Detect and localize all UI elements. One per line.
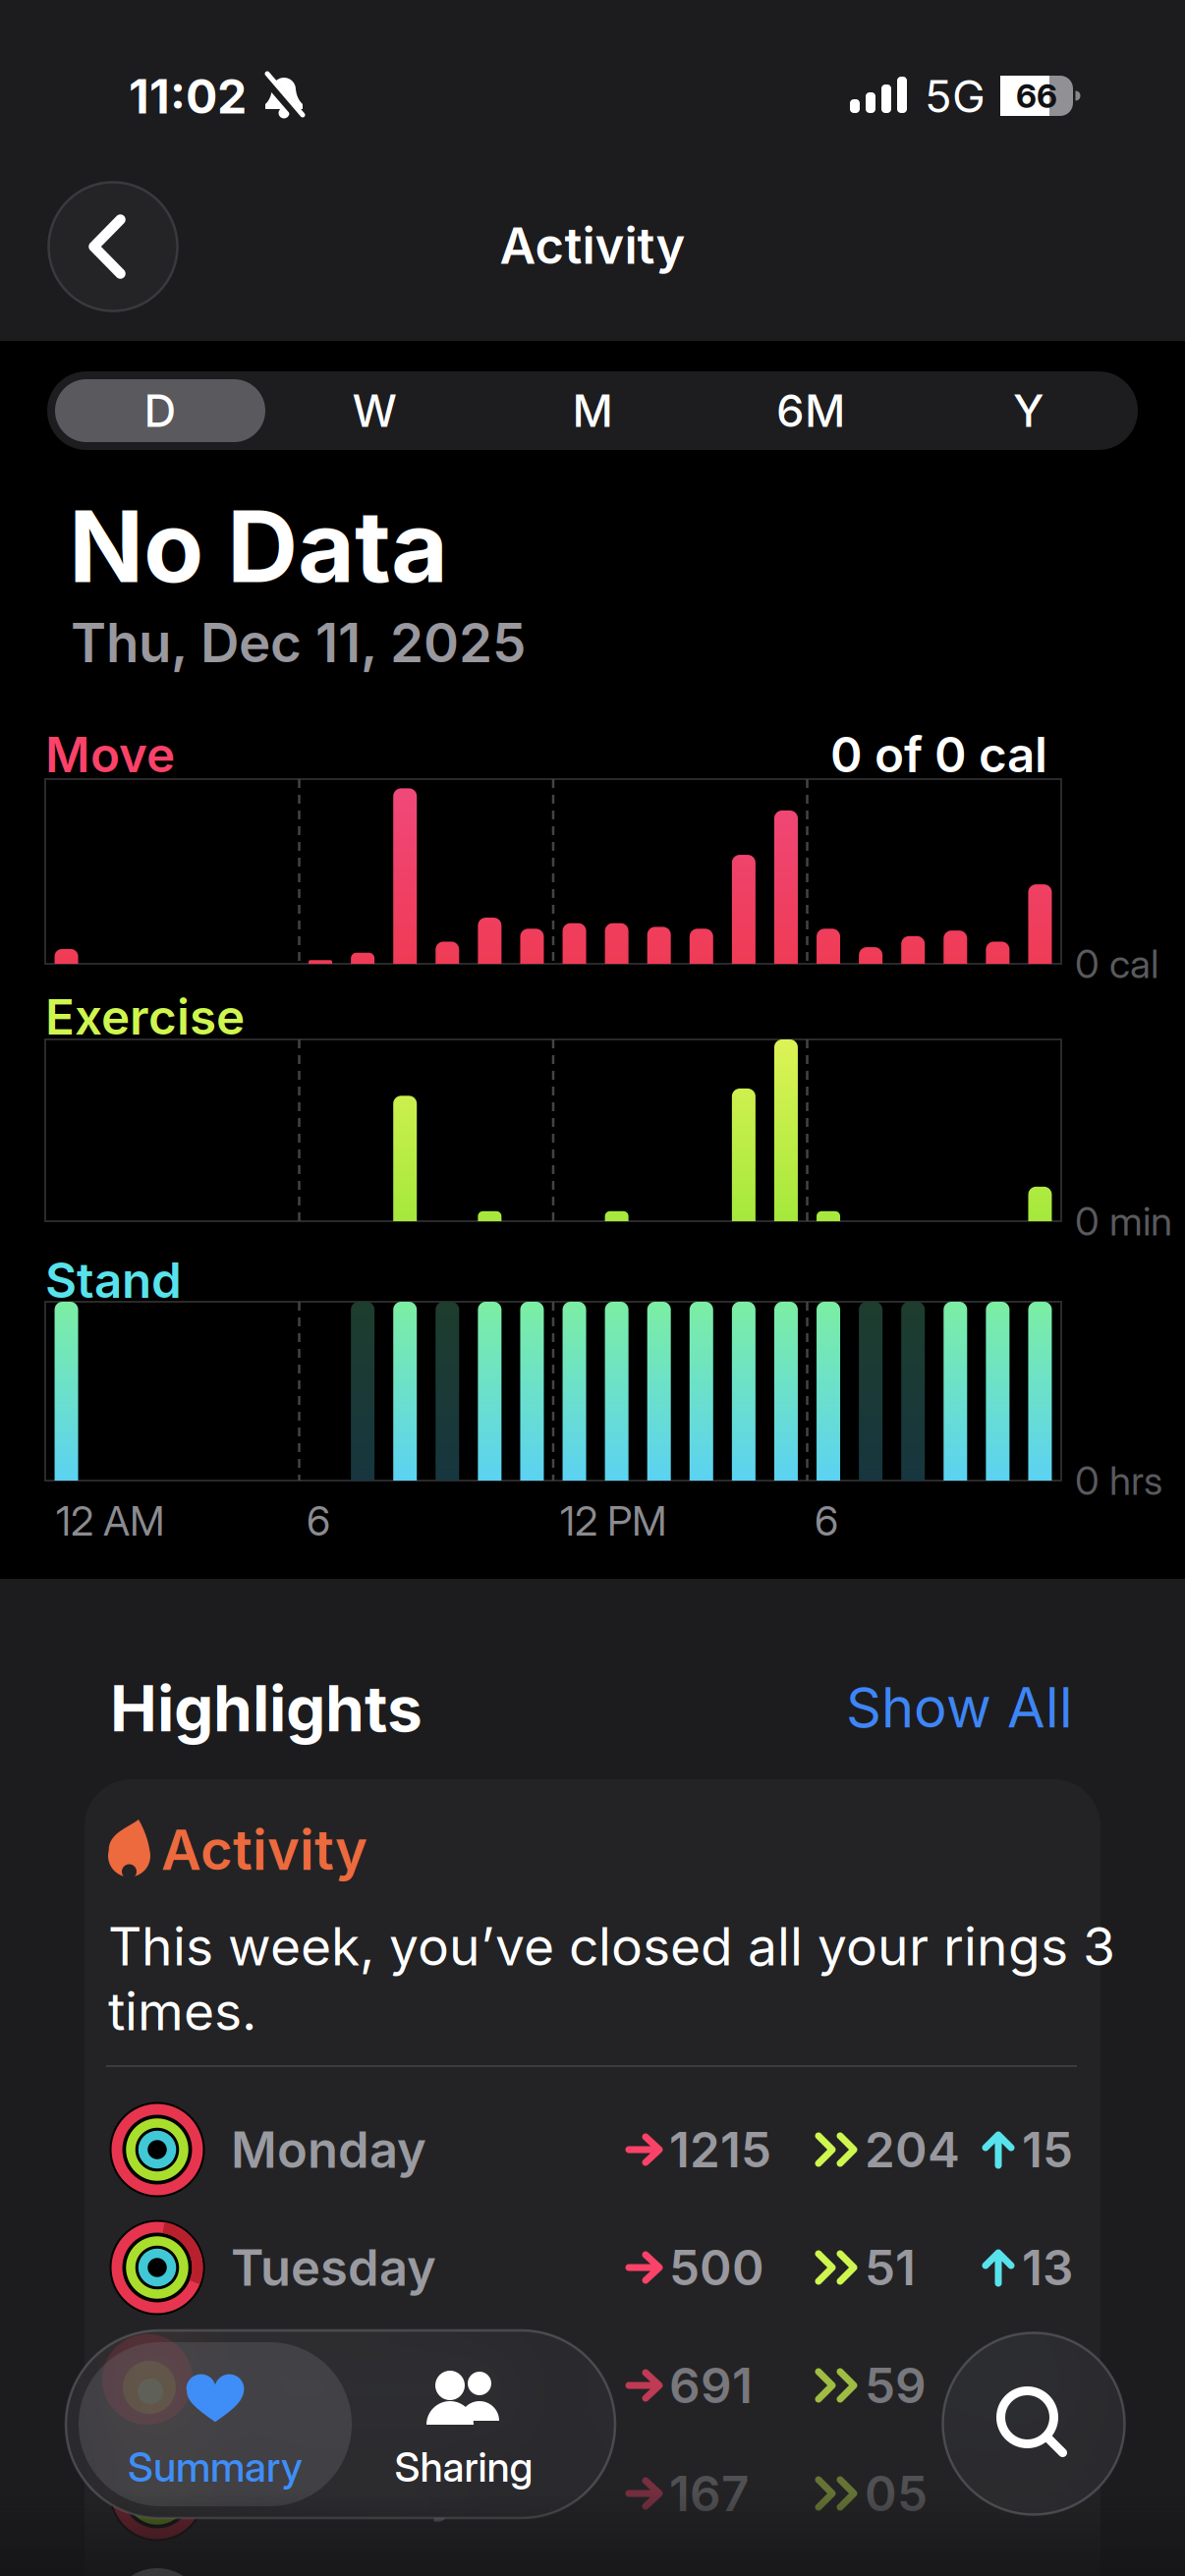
staticText: Exercise xyxy=(45,988,245,1045)
button[interactable]: Y xyxy=(924,379,1134,442)
staticText: D xyxy=(144,384,176,437)
button[interactable]: Show All xyxy=(680,1673,1073,1742)
staticText: Stand xyxy=(45,1252,182,1309)
staticText: 0 hrs xyxy=(1075,1457,1162,1504)
staticText: 17 xyxy=(1022,2357,1070,2414)
staticText: No Data xyxy=(69,488,448,604)
staticText: times. xyxy=(108,1980,256,2042)
button[interactable]: 6M xyxy=(705,379,916,442)
staticText: 59 xyxy=(865,2357,927,2414)
button[interactable]: Sharing xyxy=(341,2336,587,2512)
staticText: 0 cal xyxy=(1075,941,1158,987)
staticText: Show All xyxy=(846,1675,1073,1740)
staticText: M xyxy=(572,384,613,437)
staticText: Move xyxy=(45,726,175,783)
staticText: 0 of 0 cal xyxy=(830,726,1047,783)
staticText: 0 min xyxy=(1075,1198,1172,1244)
button[interactable] xyxy=(49,182,177,311)
staticText: 6 xyxy=(815,1497,838,1545)
staticText: Sharing xyxy=(395,2443,533,2491)
button[interactable] xyxy=(85,1779,1100,2576)
staticText: 6M xyxy=(776,384,845,437)
staticText: 05 xyxy=(865,2465,928,2522)
staticText: 11:02 xyxy=(129,68,247,124)
staticText: 15 xyxy=(1022,2121,1073,2178)
staticText: 12 PM xyxy=(560,1497,667,1545)
button[interactable]: Summary xyxy=(82,2336,349,2512)
staticText: Monday xyxy=(231,2120,426,2179)
staticText: Activity xyxy=(161,1818,367,1882)
staticText: Tuesday xyxy=(231,2238,436,2297)
staticText: 204 xyxy=(865,2121,960,2178)
staticText: 500 xyxy=(669,2239,764,2296)
staticText: Summary xyxy=(128,2443,303,2491)
staticText: Wednesday xyxy=(231,2356,516,2415)
button[interactable] xyxy=(943,2333,1125,2515)
staticText: Activity xyxy=(500,216,685,275)
staticText: 6 xyxy=(307,1497,330,1545)
staticText: W xyxy=(352,384,396,437)
staticText: 51 xyxy=(865,2239,916,2296)
staticText: 66 xyxy=(1016,76,1057,115)
staticText: Thursday xyxy=(231,2464,460,2523)
staticText: 1215 xyxy=(669,2121,771,2178)
staticText: 167 xyxy=(669,2465,749,2522)
button[interactable]: D xyxy=(55,379,265,442)
button[interactable]: W xyxy=(269,379,480,442)
staticText: Thu, Dec 11, 2025 xyxy=(71,611,526,674)
button[interactable]: M xyxy=(487,379,698,442)
staticText: 12 AM xyxy=(56,1497,165,1545)
staticText: Highlights xyxy=(110,1671,423,1746)
staticText: 5G xyxy=(925,70,986,123)
staticText: Y xyxy=(1013,384,1044,437)
staticText: 691 xyxy=(669,2357,753,2414)
staticText: 13 xyxy=(1022,2239,1073,2296)
staticText: This week, you’ve closed all your rings … xyxy=(108,1915,1115,1977)
